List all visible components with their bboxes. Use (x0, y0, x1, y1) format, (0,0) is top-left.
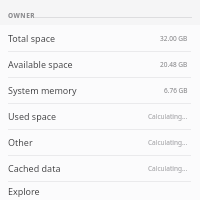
staticText: Other (8, 136, 33, 148)
button[interactable]: Used space (0, 103, 200, 129)
staticText: Calculating... (148, 112, 188, 121)
staticText: Explore (8, 185, 40, 197)
staticText: 6.76 GB (164, 86, 188, 95)
staticText: OWNER (8, 11, 36, 20)
staticText: Calculating... (148, 164, 188, 173)
staticText: Total space (8, 32, 56, 44)
staticText: Calculating... (148, 138, 188, 147)
button[interactable]: Total space (0, 25, 200, 51)
button[interactable]: Cached data (0, 155, 200, 181)
staticText: Used space (8, 110, 57, 122)
button[interactable]: Other (0, 129, 200, 155)
button[interactable]: Explore (0, 181, 200, 200)
staticText: Cached data (8, 162, 61, 174)
button[interactable]: System memory (0, 77, 200, 103)
staticText: Available space (8, 58, 73, 70)
button[interactable]: Available space (0, 51, 200, 77)
staticText: System memory (8, 84, 77, 96)
staticText: 20.48 GB (160, 60, 188, 69)
staticText: 32.00 GB (160, 34, 188, 43)
